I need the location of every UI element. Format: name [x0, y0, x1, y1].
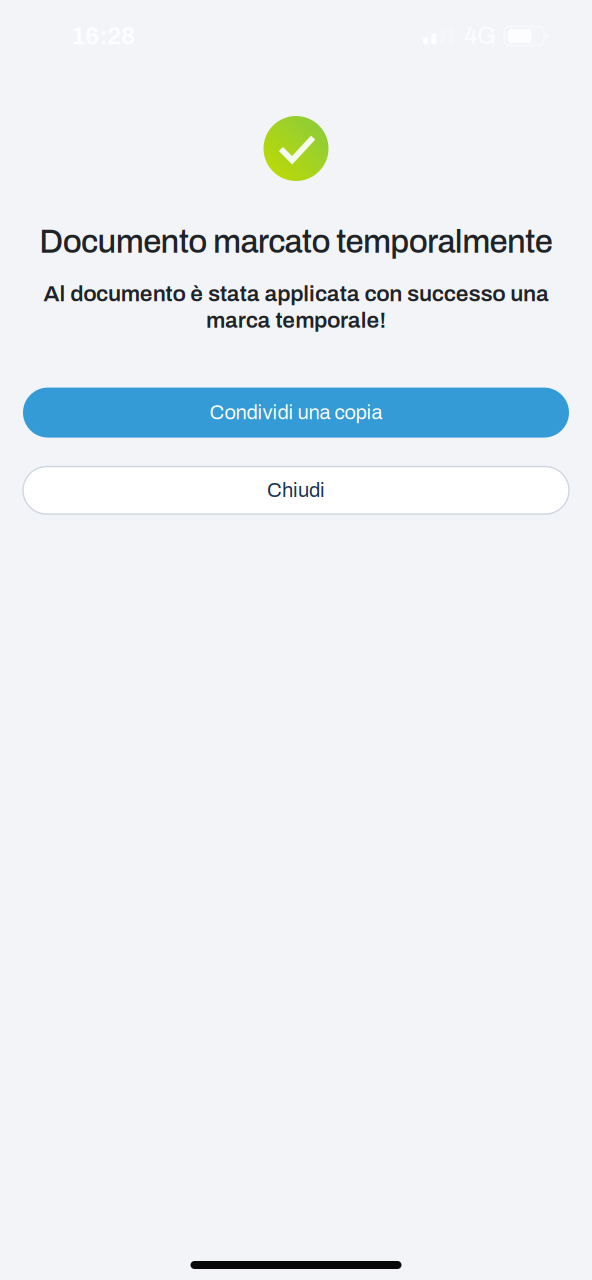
button[interactable]: Chiudi	[0, 467, 592, 514]
staticText: Condividi una copia	[209, 402, 382, 423]
staticText: Al documento è stata applicata con succe…	[43, 281, 549, 332]
staticText: Chiudi	[267, 479, 325, 501]
button[interactable]: Condividi una copia	[0, 388, 592, 438]
staticText: 4G	[464, 23, 495, 49]
staticText: 16:28	[71, 22, 135, 49]
staticText: Documento marcato temporalmente	[39, 224, 553, 259]
